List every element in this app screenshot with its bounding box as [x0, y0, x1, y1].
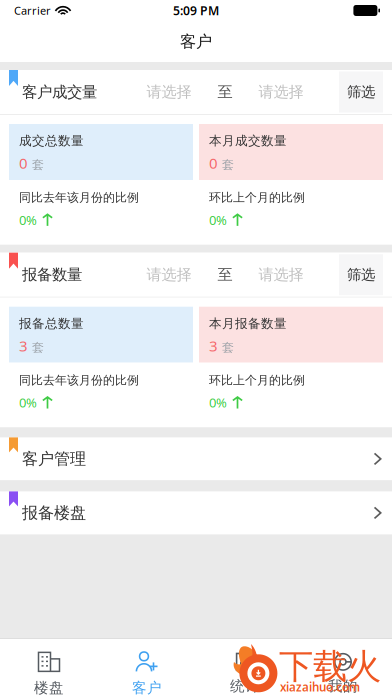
button[interactable]: 楼盘: [0, 639, 98, 696]
button[interactable]: 统计: [196, 639, 294, 696]
staticText: 筛选: [347, 266, 375, 284]
staticText: 请选择: [258, 82, 303, 101]
button[interactable]: 报备楼盘: [0, 491, 392, 534]
staticText: 套: [32, 157, 44, 172]
staticText: 报备楼盘: [22, 503, 86, 523]
button[interactable]: 请选择: [141, 253, 197, 297]
staticText: 环比上个月的比例: [209, 373, 305, 388]
staticText: 3: [209, 335, 218, 356]
staticText: 客户成交量: [22, 82, 97, 102]
staticText: 套: [32, 340, 44, 355]
button[interactable]: 请选择: [141, 70, 197, 114]
staticText: 套: [222, 340, 234, 355]
staticText: 同比去年该月份的比例: [19, 190, 139, 205]
staticText: 统计: [230, 677, 260, 695]
staticText: 我的: [328, 677, 358, 695]
staticText: 0: [209, 153, 218, 173]
staticText: 本月成交数量: [209, 133, 287, 149]
button[interactable]: 筛选: [339, 71, 383, 112]
button[interactable]: 请选择: [253, 253, 309, 297]
staticText: 3: [19, 335, 28, 356]
button[interactable]: 筛选: [339, 254, 383, 295]
staticText: 至: [217, 265, 232, 284]
staticText: 套: [222, 157, 234, 172]
staticText: 筛选: [347, 83, 375, 101]
button[interactable]: 客户管理: [0, 437, 392, 480]
button[interactable]: 我的: [294, 639, 392, 696]
staticText: xiazaihuo.com: [280, 679, 360, 695]
staticText: 0%: [19, 394, 37, 411]
staticText: 0%: [209, 211, 227, 229]
staticText: 报备数量: [22, 265, 82, 284]
button[interactable]: 客户: [98, 639, 196, 696]
staticText: 请选择: [146, 265, 191, 284]
staticText: 报备总数量: [19, 315, 84, 331]
staticText: 本月报备数量: [209, 315, 287, 331]
staticText: Carrier: [14, 3, 51, 18]
staticText: 0%: [209, 394, 227, 411]
staticText: 5:09 PM: [173, 2, 219, 19]
staticText: 请选择: [258, 265, 303, 284]
staticText: 0%: [19, 211, 37, 229]
button[interactable]: 请选择: [253, 70, 309, 114]
staticText: 同比去年该月份的比例: [19, 373, 139, 388]
staticText: 至: [217, 82, 232, 101]
staticText: 客户: [180, 31, 212, 52]
staticText: 楼盘: [34, 679, 64, 696]
staticText: 0: [19, 153, 28, 173]
staticText: 环比上个月的比例: [209, 190, 305, 205]
staticText: 客户: [132, 679, 162, 696]
staticText: 下载火: [279, 645, 381, 688]
staticText: 请选择: [146, 82, 191, 101]
staticText: 客户管理: [22, 449, 86, 469]
staticText: 成交总数量: [19, 133, 84, 149]
